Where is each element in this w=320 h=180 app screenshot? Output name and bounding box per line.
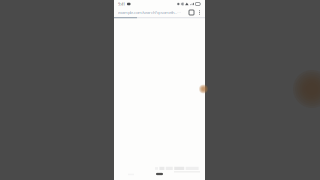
staticText: 9:41	[118, 1, 125, 7]
staticText: ⋯	[177, 10, 181, 15]
button[interactable]: Tabs	[189, 10, 194, 15]
button[interactable]: Menu	[198, 9, 201, 16]
staticText: example.com/search?q=something	[118, 10, 177, 15]
button[interactable]: example.com/search?q=something	[118, 8, 177, 17]
